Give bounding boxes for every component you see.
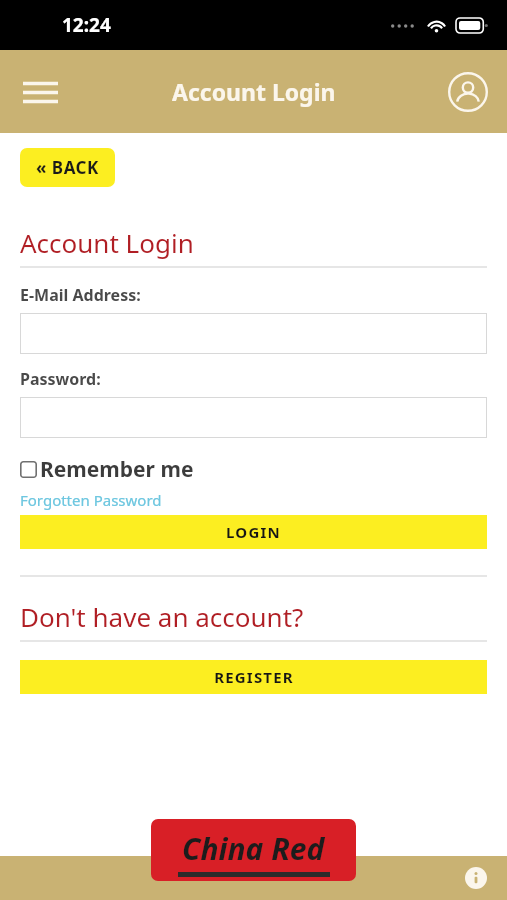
staticText: 12:24 xyxy=(62,12,111,38)
button[interactable]: REGISTER xyxy=(20,660,487,694)
staticText: Account Login xyxy=(172,76,336,107)
button[interactable]: Menu xyxy=(12,64,68,120)
staticText: China Red xyxy=(182,828,325,869)
staticText: LOGIN xyxy=(226,522,281,542)
staticText: « BACK xyxy=(36,156,99,179)
button[interactable]: Information xyxy=(459,861,493,895)
button[interactable]: Account xyxy=(442,66,494,118)
button[interactable]: LOGIN xyxy=(20,515,487,549)
staticText: REGISTER xyxy=(214,667,294,687)
button[interactable]: China Red logo xyxy=(151,819,356,881)
button[interactable]: Remember me xyxy=(20,455,194,484)
staticText: Account Login xyxy=(20,225,194,260)
button[interactable] xyxy=(20,313,487,354)
staticText: Forgotten Password xyxy=(20,490,162,510)
button[interactable]: « BACK xyxy=(20,148,115,187)
button[interactable]: Forgotten Password xyxy=(20,490,162,510)
staticText: Password: xyxy=(20,368,101,390)
staticText: Remember me xyxy=(40,455,194,484)
button[interactable] xyxy=(20,397,487,438)
staticText: Don't have an account? xyxy=(20,599,304,634)
staticText: E-Mail Address: xyxy=(20,284,141,306)
